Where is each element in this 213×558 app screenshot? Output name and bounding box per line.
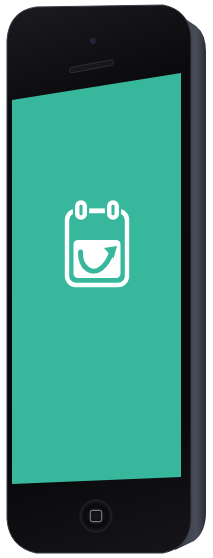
button[interactable]: Calendar app splash screen on phone [0,0,213,558]
